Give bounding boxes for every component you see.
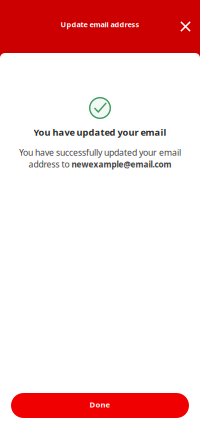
staticText: Done	[89, 399, 110, 410]
staticText: You have successfully updated your email	[19, 146, 181, 158]
button[interactable]: Done	[11, 393, 189, 418]
staticText: Update email address	[60, 19, 139, 29]
button[interactable]: Close	[173, 14, 197, 38]
staticText: address to newexample@email.com	[28, 158, 171, 170]
staticText: You have updated your email	[33, 126, 166, 138]
